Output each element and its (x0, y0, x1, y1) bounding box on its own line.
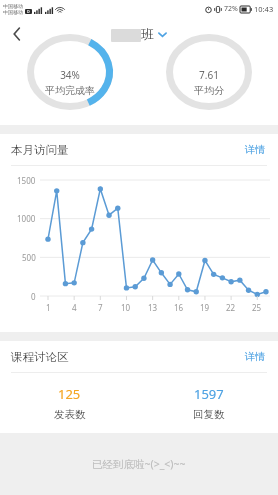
staticText: 详情 (245, 350, 265, 363)
staticText: 班 (141, 26, 154, 42)
staticText: 1000 (17, 213, 36, 224)
staticText: 10 (121, 302, 131, 313)
staticText: 发表数 (54, 408, 86, 421)
staticText: 已经到底啦~(>_<)~~ (92, 457, 186, 471)
staticText: 1 (46, 302, 51, 313)
staticText: 125 (58, 385, 81, 403)
button[interactable]: 详情 (243, 345, 267, 368)
staticText: 详情 (245, 143, 265, 156)
staticText: 课程讨论区 (11, 350, 69, 364)
button[interactable]: 班 (111, 26, 167, 42)
staticText: 13 (148, 302, 158, 313)
staticText: D (27, 9, 30, 14)
button[interactable]: 34% (27, 34, 113, 110)
staticText: 500 (22, 252, 36, 263)
staticText: 1597 (194, 385, 224, 403)
staticText: 10:43 (254, 4, 274, 14)
button[interactable]: Back (0, 18, 34, 49)
staticText: 34% (60, 68, 80, 82)
staticText: 4 (72, 302, 77, 313)
staticText: 7.61 (199, 68, 219, 82)
staticText: 7 (98, 302, 103, 313)
staticText: 中国移动 (3, 9, 23, 15)
staticText: 0 (31, 291, 36, 302)
staticText: 本月访问量 (11, 143, 69, 157)
staticText: 中国移动 (3, 3, 23, 9)
staticText: 72% (224, 4, 238, 14)
staticText: 19 (200, 302, 210, 313)
button[interactable]: 7.61 (166, 34, 252, 110)
staticText: 平均分 (194, 84, 224, 97)
staticText: 25 (252, 302, 262, 313)
staticText: 平均完成率 (45, 84, 95, 97)
staticText: 16 (174, 302, 184, 313)
staticText: 22 (226, 302, 236, 313)
button[interactable]: 1597 (139, 385, 278, 421)
button[interactable]: 125 (0, 385, 139, 421)
staticText: 回复数 (193, 408, 225, 421)
staticText: 1500 (17, 175, 36, 186)
button[interactable]: 详情 (243, 138, 267, 161)
